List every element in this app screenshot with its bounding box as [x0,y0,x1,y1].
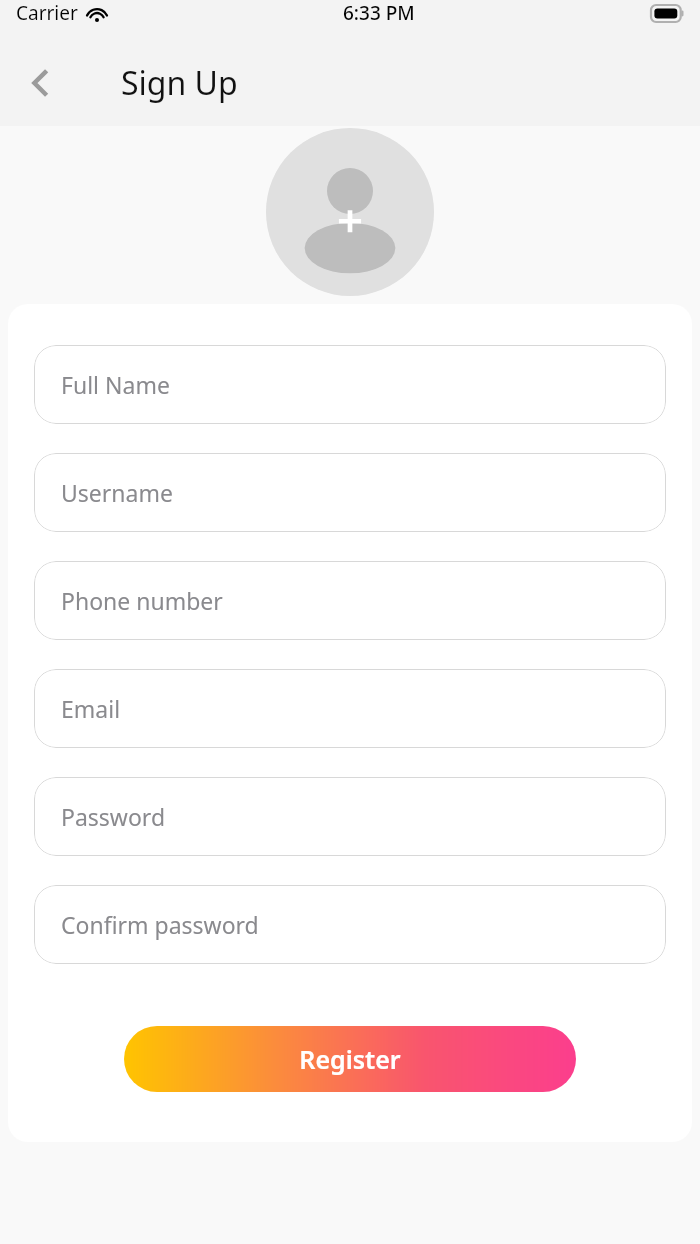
staticText: Sign Up [121,61,238,105]
button[interactable]: Add profile photo [266,128,434,296]
staticText: Phone number [61,585,223,616]
button[interactable]: Register [124,1026,576,1092]
button[interactable]: Password [34,777,666,856]
button[interactable]: Full Name [34,345,666,424]
staticText: 6:33 PM [343,0,415,26]
staticText: Confirm password [61,909,259,940]
staticText: Full Name [61,369,170,400]
button[interactable]: Back [12,55,68,111]
staticText: Carrier [16,0,78,26]
button[interactable]: Username [34,453,666,532]
button[interactable]: Email [34,669,666,748]
button[interactable]: Phone number [34,561,666,640]
button[interactable]: Confirm password [34,885,666,964]
staticText: Email [61,693,121,724]
staticText: Username [61,477,173,508]
staticText: Password [61,801,166,832]
staticText: Register [299,1042,401,1076]
